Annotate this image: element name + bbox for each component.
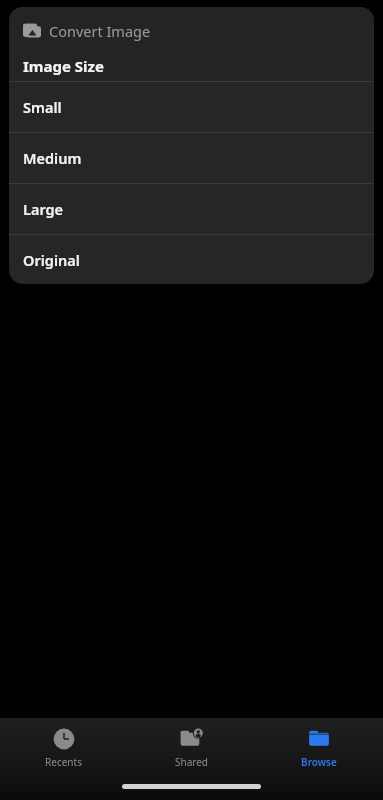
staticText: Browse bbox=[301, 755, 337, 769]
staticText: Small bbox=[23, 97, 62, 117]
staticText: Medium bbox=[23, 148, 82, 168]
staticText: Original bbox=[23, 250, 80, 270]
button[interactable]: Browse bbox=[255, 726, 383, 769]
staticText: Shared bbox=[175, 755, 208, 769]
button[interactable]: Large bbox=[9, 184, 374, 234]
button[interactable]: Small bbox=[9, 82, 374, 132]
staticText: Large bbox=[23, 199, 64, 219]
button[interactable]: Shared bbox=[127, 726, 255, 769]
button[interactable]: Recents bbox=[0, 726, 127, 769]
button[interactable]: Medium bbox=[9, 133, 374, 183]
staticText: Recents bbox=[45, 755, 82, 769]
button[interactable]: Original bbox=[9, 235, 374, 284]
staticText: Convert Image bbox=[49, 21, 151, 41]
staticText: Image Size bbox=[23, 56, 104, 76]
